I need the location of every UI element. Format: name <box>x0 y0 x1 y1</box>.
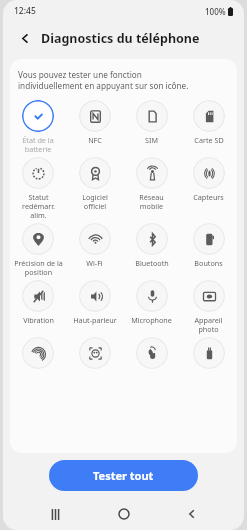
button[interactable]: badge <box>66 157 123 211</box>
staticText: Tester tout <box>93 468 154 483</box>
staticText: Carte SD <box>194 135 224 145</box>
staticText: Diagnostics du téléphone <box>41 30 200 47</box>
staticText: Appareil photo <box>194 315 223 334</box>
button[interactable]: Back <box>13 26 37 50</box>
button[interactable]: usb <box>180 337 237 369</box>
other: cam <box>193 280 225 312</box>
staticText: 100% <box>205 6 226 17</box>
staticText: Boutons <box>194 258 223 268</box>
other: vib <box>22 280 54 312</box>
staticText: Bluetooth <box>135 258 169 268</box>
button[interactable]: sd <box>180 100 237 145</box>
button[interactable]: cam <box>180 280 237 334</box>
button[interactable]: Tester tout <box>49 460 198 491</box>
button[interactable]: spk <box>66 280 123 325</box>
staticText: Précision de la position <box>14 258 63 277</box>
other: nfc <box>79 100 111 132</box>
button[interactable]: sim <box>123 100 180 145</box>
staticText: NFC <box>88 135 102 145</box>
other: badge <box>79 157 111 189</box>
other: check <box>22 100 54 132</box>
other: sd <box>193 100 225 132</box>
staticText: Logiciel officiel <box>82 192 108 211</box>
other: spk <box>79 280 111 312</box>
button[interactable]: face <box>66 337 123 369</box>
other: face <box>79 337 111 369</box>
button[interactable]: wifi <box>66 223 123 268</box>
button[interactable]: check <box>10 100 66 154</box>
button[interactable]: nfc <box>66 100 123 145</box>
other: usb <box>193 337 225 369</box>
staticText: Haut-parleur <box>73 315 117 325</box>
staticText: État de la batterie <box>22 135 54 154</box>
staticText: Statut redémarr. alim. <box>22 192 55 220</box>
staticText: Wi-Fi <box>86 258 103 268</box>
other: pin <box>22 223 54 255</box>
staticText: Microphone <box>131 315 172 325</box>
button[interactable]: mic <box>123 280 180 325</box>
other: btn <box>193 223 225 255</box>
staticText: 12:45 <box>14 5 36 17</box>
button[interactable]: signal <box>123 157 180 211</box>
button[interactable]: pin <box>10 223 66 277</box>
other: sim <box>136 100 168 132</box>
other: bt <box>136 223 168 255</box>
button[interactable]: touch <box>123 337 180 369</box>
button[interactable]: power <box>10 157 66 220</box>
staticText: Vous pouvez tester une fonction individu… <box>18 69 189 91</box>
other: touch <box>136 337 168 369</box>
button[interactable]: vib <box>10 280 66 325</box>
button[interactable]: Home <box>107 498 141 530</box>
staticText: SIM <box>145 135 158 145</box>
staticText: Capteurs <box>193 192 224 202</box>
button[interactable]: bt <box>123 223 180 268</box>
other: wifi <box>79 223 111 255</box>
button[interactable]: Back <box>175 498 209 530</box>
other: power <box>22 157 54 189</box>
other: sensor <box>193 157 225 189</box>
button[interactable]: Recents <box>38 498 72 530</box>
button[interactable]: finger <box>10 337 66 369</box>
other: finger <box>22 337 54 369</box>
staticText: Vibration <box>23 315 54 325</box>
button[interactable]: btn <box>180 223 237 268</box>
other: signal <box>136 157 168 189</box>
button[interactable]: sensor <box>180 157 237 202</box>
other: mic <box>136 280 168 312</box>
staticText: Réseau mobile <box>139 192 164 211</box>
